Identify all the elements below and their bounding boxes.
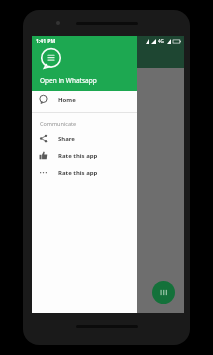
button[interactable]: Home [32,91,137,108]
staticText: Share [58,135,75,143]
staticText: 4G [158,38,164,44]
staticText: 1:41 PM [36,38,56,45]
button[interactable]: Rate this app [32,147,137,164]
button[interactable]: Compose message [152,281,175,304]
staticText: Rate this app [58,152,98,160]
button[interactable]: 1:41 PM [32,36,137,91]
button[interactable]: Rate this app [32,164,137,181]
staticText: Communicate [40,120,77,127]
staticText: Home [58,96,76,104]
button[interactable]: Share [32,130,137,147]
staticText: Open in Whatsapp [40,76,97,85]
staticText: Rate this app [58,169,98,177]
